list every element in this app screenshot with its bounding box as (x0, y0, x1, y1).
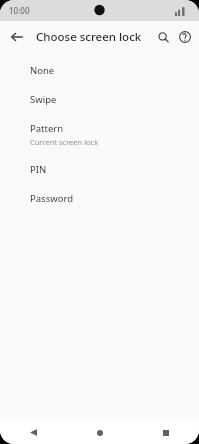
button[interactable]: Help (174, 26, 196, 48)
staticText: Choose screen lock (36, 29, 142, 45)
button[interactable]: Password (0, 184, 199, 213)
button[interactable]: None (0, 56, 199, 85)
button[interactable]: Search (152, 26, 174, 48)
staticText: 10:00 (9, 5, 30, 16)
staticText: None (30, 64, 55, 77)
staticText: Current screen lock (30, 137, 99, 147)
button[interactable]: Pattern (0, 114, 199, 155)
button[interactable]: Navigate up (5, 25, 29, 49)
button[interactable]: Back (0, 421, 67, 444)
button[interactable]: PIN (0, 155, 199, 184)
staticText: PIN (30, 163, 47, 176)
button[interactable]: Swipe (0, 85, 199, 114)
button[interactable]: Recent apps (133, 421, 199, 444)
staticText: Swipe (30, 93, 57, 106)
button[interactable]: Home (67, 421, 133, 444)
staticText: Password (30, 192, 73, 205)
staticText: Pattern (30, 122, 64, 135)
